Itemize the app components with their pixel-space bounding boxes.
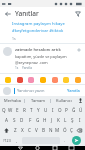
button[interactable]: I <box>49 105 56 115</box>
staticText: K <box>57 117 60 123</box>
staticText: kapattım, yüzde ve paylaşım olan <box>15 54 74 59</box>
staticText: U <box>44 107 48 113</box>
button[interactable]: . <box>61 136 69 145</box>
staticText: @zeynepnaz .com <box>15 60 48 65</box>
button[interactable]: Kullanıcı <box>51 96 76 105</box>
button[interactable]: Instagram paylaşım hikaye <box>0 20 85 43</box>
button[interactable]: O <box>56 105 63 115</box>
button[interactable]: A <box>2 115 10 125</box>
staticText: 1s <box>15 66 19 70</box>
button[interactable]: Q <box>1 105 7 115</box>
button[interactable]: B <box>40 125 47 135</box>
button[interactable]: Z <box>11 125 19 135</box>
staticText: #keşfetgonderivar #tiktok <box>12 28 64 34</box>
staticText: Ş <box>71 117 74 123</box>
button[interactable]: Send <box>72 136 81 145</box>
button[interactable]: Tamam <box>25 96 50 105</box>
staticText: zatmade hesabını artık <box>15 47 61 53</box>
button[interactable]: J <box>48 115 55 125</box>
staticText: Yanıtınızı yazın <box>17 88 45 93</box>
button[interactable]: W <box>7 105 14 115</box>
button[interactable]: Hide keyboard <box>63 146 80 150</box>
staticText: Kullanıcı <box>56 98 72 103</box>
staticText: T <box>30 107 33 113</box>
button[interactable]: Merhaba <box>0 96 24 105</box>
button[interactable]: Recents <box>46 146 63 150</box>
staticText: W <box>8 107 13 113</box>
button[interactable]: Ç <box>68 125 75 135</box>
button[interactable]: Voice input <box>76 96 85 105</box>
staticText: 1s <box>12 36 16 41</box>
staticText: ?123 <box>3 138 11 143</box>
button[interactable]: C <box>26 125 33 135</box>
button[interactable]: T <box>28 105 35 115</box>
staticText: O <box>58 107 62 113</box>
staticText: Ü <box>79 107 83 113</box>
button[interactable]: G <box>34 115 41 125</box>
staticText: Z <box>14 127 17 133</box>
staticText: D <box>20 117 24 123</box>
button[interactable]: I <box>76 115 83 125</box>
button[interactable]: zatmade hesabını artık <box>0 44 85 73</box>
button[interactable]: Back <box>12 146 29 150</box>
staticText: B <box>42 127 45 133</box>
button[interactable]: Home <box>29 146 46 150</box>
staticText: Tamam <box>31 98 45 103</box>
button[interactable]: K <box>55 115 62 125</box>
button[interactable]: Back <box>3 9 12 18</box>
button[interactable]: D <box>18 115 26 125</box>
button[interactable]: Emoji <box>4 76 11 83</box>
button[interactable]: Ü <box>77 105 84 115</box>
staticText: Instagram paylaşım hikaye <box>12 21 65 27</box>
staticText: . <box>64 138 66 144</box>
staticText: Merhaba <box>4 98 21 103</box>
staticText: I <box>52 107 54 113</box>
button[interactable]: ?123 <box>1 136 13 145</box>
button[interactable]: Ö <box>61 125 68 135</box>
button[interactable]: Ğ <box>70 105 77 115</box>
button[interactable]: Ş <box>69 115 76 125</box>
button[interactable]: Emoji <box>39 76 46 83</box>
button[interactable]: R <box>21 105 28 115</box>
button[interactable]: Yanıtınızı yazın <box>17 88 65 93</box>
button[interactable]: , <box>13 136 21 145</box>
button[interactable]: Shift <box>1 125 11 135</box>
staticText: G <box>36 117 40 123</box>
staticText: Ç <box>70 127 73 133</box>
button[interactable]: Emoji <box>74 76 81 83</box>
button[interactable]: U <box>42 105 49 115</box>
button[interactable]: S <box>10 115 18 125</box>
button[interactable]: Emoji <box>51 76 58 83</box>
button[interactable]: Filter <box>73 9 82 18</box>
button[interactable]: N <box>47 125 54 135</box>
staticText: Yanıtlar <box>15 9 39 18</box>
staticText: P <box>65 107 68 113</box>
button[interactable]: Backspace <box>75 125 84 135</box>
button[interactable]: X <box>19 125 26 135</box>
button[interactable]: V <box>33 125 40 135</box>
staticText: S <box>13 117 16 123</box>
button[interactable]: Y <box>35 105 42 115</box>
button[interactable]: Yanıtla <box>65 87 82 94</box>
staticText: J <box>51 117 53 123</box>
staticText: E <box>16 107 19 113</box>
staticText: C <box>28 127 31 133</box>
staticText: X <box>21 127 24 133</box>
button[interactable]: Emoji <box>62 76 69 83</box>
button[interactable]: M <box>54 125 61 135</box>
button[interactable]: P <box>63 105 70 115</box>
button[interactable]: H <box>41 115 48 125</box>
staticText: Yanıtla <box>67 88 80 93</box>
button[interactable]: More options <box>76 47 82 53</box>
staticText: V <box>35 127 38 133</box>
button[interactable]: Emoji <box>27 76 34 83</box>
staticText: N <box>49 127 53 133</box>
button[interactable]: Emoji <box>16 76 23 83</box>
staticText: R <box>23 107 26 113</box>
button[interactable]: L <box>62 115 69 125</box>
button[interactable]: E <box>14 105 21 115</box>
staticText: M <box>55 127 60 133</box>
staticText: Y <box>37 107 40 113</box>
button[interactable]: F <box>26 115 34 125</box>
